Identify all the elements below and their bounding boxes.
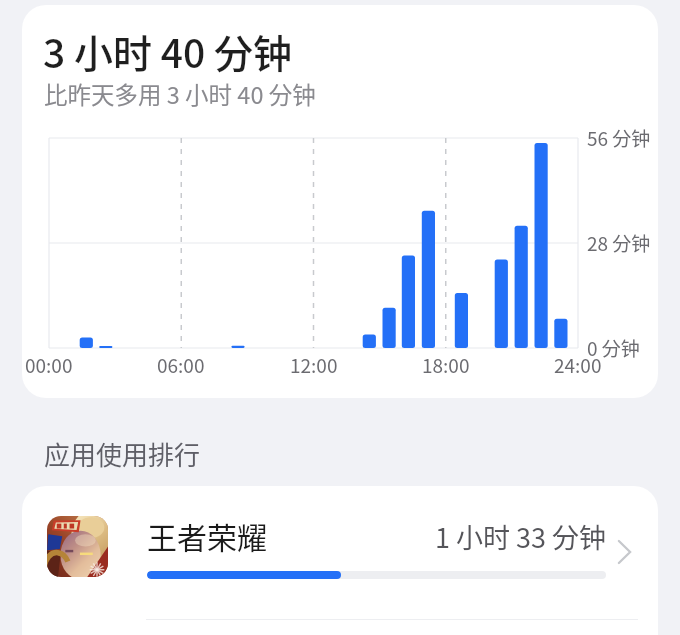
other: 查看详情 bbox=[608, 535, 642, 569]
staticText: 12:00 bbox=[290, 351, 338, 379]
staticText: 应用使用排行 bbox=[44, 435, 201, 473]
staticText: 王者荣耀 bbox=[147, 514, 267, 557]
staticText: 06:00 bbox=[157, 351, 205, 379]
staticText: 1 小时 33 分钟 bbox=[435, 517, 607, 556]
staticText: 3 小时 40 分钟 bbox=[43, 23, 293, 79]
staticText: 比昨天多用 3 小时 40 分钟 bbox=[44, 77, 316, 111]
staticText: 00:00 bbox=[25, 351, 73, 379]
staticText: 18:00 bbox=[422, 351, 470, 379]
staticText: 24:00 bbox=[554, 351, 602, 379]
staticText: 28 分钟 bbox=[587, 229, 651, 257]
staticText: 56 分钟 bbox=[587, 124, 651, 152]
staticText: 0 分钟 bbox=[587, 334, 640, 362]
button[interactable]: 王者荣耀 bbox=[22, 486, 658, 635]
